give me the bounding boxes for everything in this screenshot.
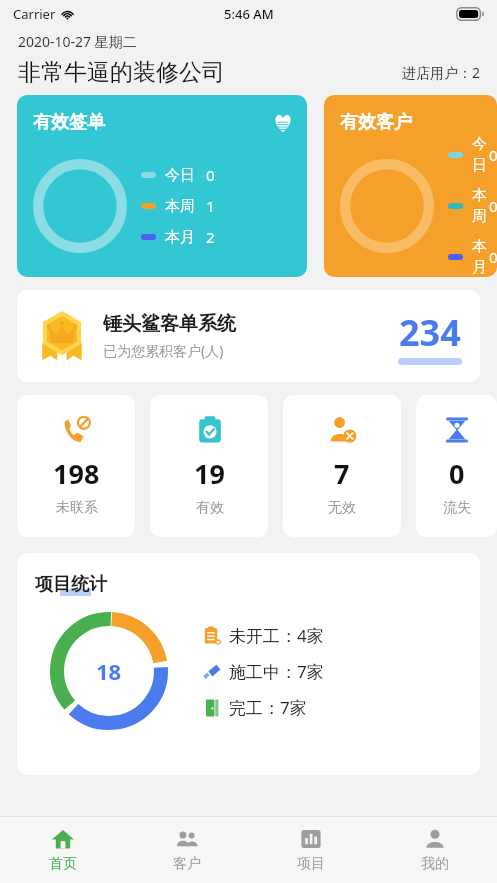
staticText: 本周 xyxy=(472,186,489,226)
button[interactable]: 首页 xyxy=(0,817,125,883)
staticText: 今日 xyxy=(165,166,195,185)
button[interactable]: 有效客户 xyxy=(324,95,497,277)
staticText: 项目 xyxy=(297,855,325,873)
staticText: 有效 xyxy=(196,499,224,517)
staticText: 未开工：4家 xyxy=(229,624,324,647)
button[interactable]: 19 xyxy=(150,395,268,537)
other: Signed orders xyxy=(273,113,293,133)
staticText: 进店用户：2 xyxy=(402,63,481,82)
staticText: 5:46 AM xyxy=(224,5,274,23)
staticText: 无效 xyxy=(328,499,356,517)
button[interactable]: 有效签单 xyxy=(17,95,307,277)
staticText: Carrier xyxy=(13,5,56,23)
button[interactable]: 7 xyxy=(283,395,401,537)
staticText: 2020-10-27 星期二 xyxy=(18,32,137,51)
staticText: 客户 xyxy=(173,855,201,873)
staticText: 有效签单 xyxy=(33,111,105,134)
staticText: 非常牛逼的装修公司 xyxy=(18,58,225,87)
button[interactable]: 客户 xyxy=(125,817,249,883)
staticText: 首页 xyxy=(49,855,77,873)
staticText: 流失 xyxy=(443,499,471,517)
staticText: 1 xyxy=(206,196,215,216)
button[interactable]: 198 xyxy=(17,395,135,537)
button[interactable]: 锤头鲨客单系统 xyxy=(17,290,480,382)
staticText: 今日 xyxy=(472,135,489,175)
staticText: 0 xyxy=(206,165,215,185)
staticText: 0 xyxy=(449,455,465,492)
staticText: 本月 xyxy=(165,228,195,247)
staticText: 本周 xyxy=(165,197,195,216)
staticText: 7 xyxy=(334,455,350,492)
staticText: 项目统计 xyxy=(35,573,107,596)
staticText: 未联系 xyxy=(56,499,98,517)
staticText: 锤头鲨客单系统 xyxy=(103,312,236,336)
staticText: 198 xyxy=(53,455,100,492)
staticText: 2 xyxy=(206,227,215,247)
staticText: 施工中：7家 xyxy=(229,660,324,683)
staticText: 我的 xyxy=(421,855,449,873)
staticText: 18 xyxy=(96,656,122,686)
button[interactable]: 我的 xyxy=(373,817,497,883)
staticText: 已为您累积客户(人) xyxy=(103,341,224,360)
staticText: 有效客户 xyxy=(340,111,412,134)
staticText: 完工：7家 xyxy=(229,696,307,719)
button[interactable]: 0 xyxy=(416,395,497,537)
staticText: 本月 xyxy=(472,237,489,277)
button[interactable]: 项目 xyxy=(249,817,373,883)
staticText: 234 xyxy=(399,308,461,357)
staticText: 19 xyxy=(194,455,225,492)
